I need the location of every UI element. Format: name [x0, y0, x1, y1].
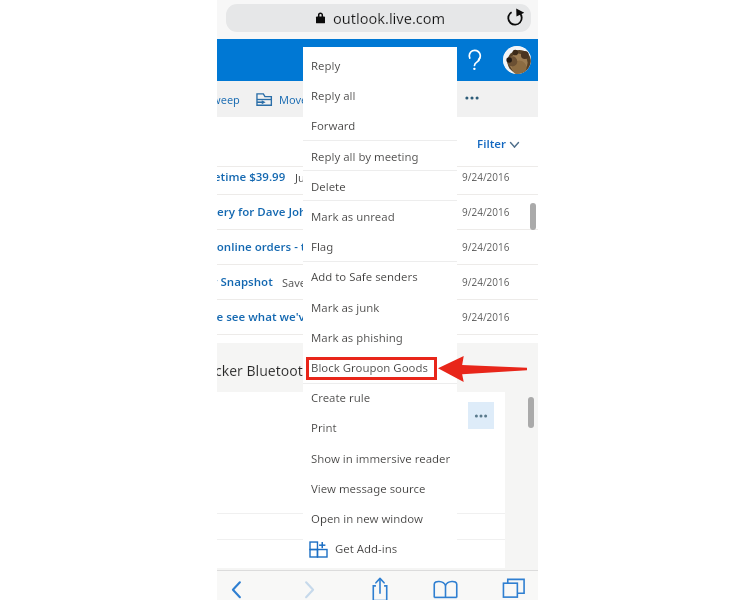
button[interactable]: Account	[503, 46, 531, 74]
staticText: Forward	[311, 118, 356, 134]
staticText: Mark as phishing	[311, 330, 403, 346]
staticText: Ju	[295, 170, 305, 185]
staticText: Delivery for Dave John	[217, 204, 314, 220]
button[interactable]: Sweep	[217, 92, 240, 107]
button[interactable]: Mark as unread	[303, 202, 457, 232]
staticText: Weekly Snapshot	[217, 274, 273, 290]
button[interactable]: Print	[303, 413, 457, 443]
staticText: Reply	[311, 58, 341, 74]
staticText: 9/24/2016	[462, 310, 510, 324]
button[interactable]: Tabs	[502, 576, 526, 600]
staticText: Delete	[311, 179, 346, 195]
staticText: Sweep	[217, 92, 240, 107]
staticText: Block Groupon Goods	[311, 360, 428, 376]
staticText: Mark as junk	[311, 300, 380, 316]
staticText: 9/24/2016	[462, 170, 510, 184]
button[interactable]: Back	[225, 577, 249, 600]
staticText: Your online orders - t	[217, 239, 306, 255]
staticText: Move to	[279, 92, 321, 107]
staticText: Add to Safe senders	[311, 269, 418, 285]
button[interactable]: Come see what we've	[217, 300, 538, 334]
button[interactable]: outlook.live.com	[226, 4, 531, 32]
staticText: outlook.live.com	[333, 8, 446, 28]
button[interactable]: Forward	[303, 111, 457, 141]
staticText: Save	[282, 275, 307, 290]
staticText: Mark as unread	[311, 209, 395, 225]
button[interactable]: Reply all by meeting	[303, 142, 457, 172]
button[interactable]: Mark as phishing	[303, 323, 457, 353]
staticText: 9/24/2016	[462, 205, 510, 219]
button[interactable]: Reply	[303, 51, 457, 81]
button[interactable]: Message actions	[468, 402, 494, 429]
button[interactable]: Reply all	[303, 81, 457, 111]
staticText: Flag	[311, 239, 334, 255]
staticText: Reply all	[311, 88, 356, 104]
button[interactable]: More commands	[458, 86, 486, 110]
staticText: Show in immersive reader	[311, 451, 451, 467]
staticText: Open in new window	[311, 511, 423, 527]
button[interactable]: Forward	[297, 577, 321, 600]
staticText: Lifetime $39.99	[217, 169, 286, 185]
button[interactable]: Reload	[504, 7, 526, 29]
staticText: 9/24/2016	[462, 275, 510, 289]
button[interactable]: Add to Safe senders	[303, 262, 457, 292]
button[interactable]: Delivery for Dave John	[217, 195, 538, 229]
staticText: Get Add-ins	[335, 541, 398, 557]
staticText: Fitness Tracker Bluetooth	[217, 361, 312, 380]
staticText: 9/24/2016	[462, 240, 510, 254]
button[interactable]: View message source	[303, 474, 457, 504]
button[interactable]: Create rule	[303, 383, 457, 413]
button[interactable]: Open in new window	[303, 504, 457, 534]
staticText: View message source	[311, 481, 426, 497]
staticText: Print	[311, 420, 337, 436]
staticText: Create rule	[311, 390, 371, 406]
button[interactable]: Help	[459, 45, 489, 75]
button[interactable]: Get Add-ins	[303, 534, 457, 564]
button[interactable]: Weekly Snapshot	[217, 265, 538, 299]
button[interactable]: Your online orders - t	[217, 230, 538, 264]
button[interactable]: Mark as junk	[303, 293, 457, 323]
button[interactable]: Lifetime $39.99	[217, 160, 538, 194]
button[interactable]: Block Groupon Goods	[303, 353, 457, 383]
button[interactable]: Show in immersive reader	[303, 444, 457, 474]
staticText: Come see what we've	[217, 309, 312, 325]
button[interactable]: Share	[368, 575, 392, 600]
button[interactable]: Filter	[477, 136, 519, 152]
button[interactable]: Flag	[303, 232, 457, 262]
staticText: Filter	[477, 136, 507, 152]
button[interactable]: Delete	[303, 172, 457, 202]
button[interactable]: Bookmarks	[433, 579, 458, 599]
staticText: Reply all by meeting	[311, 149, 419, 165]
button[interactable]: Move to	[256, 92, 321, 107]
